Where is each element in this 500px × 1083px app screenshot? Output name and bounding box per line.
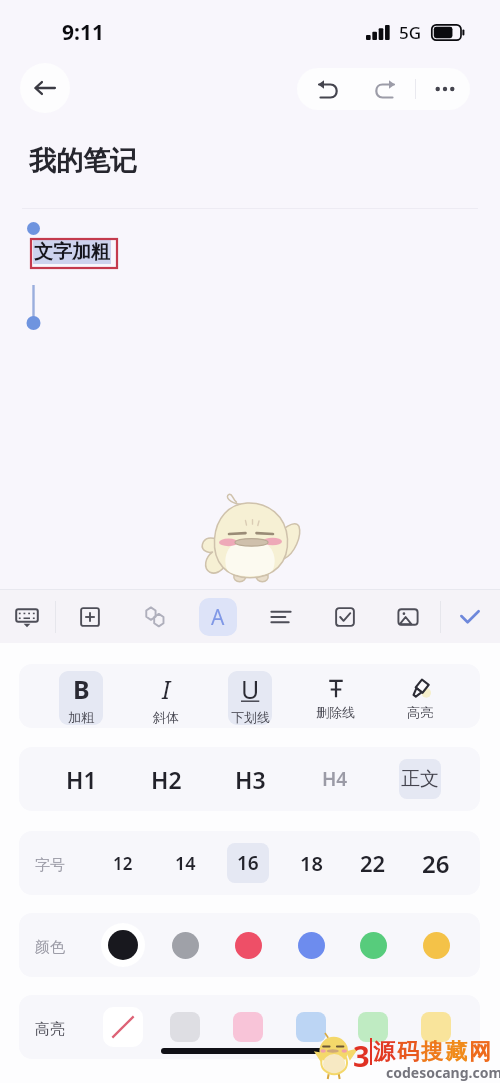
staticText: 高亮 (407, 704, 433, 720)
button[interactable]: 14 (164, 843, 206, 883)
button[interactable]: 删除线 (313, 671, 357, 725)
staticText: H3 (235, 764, 266, 795)
button[interactable]: H2 (145, 759, 187, 799)
button[interactable]: Insert (68, 595, 112, 639)
staticText: 颜色 (35, 938, 65, 957)
staticText: 3 (353, 1036, 370, 1075)
button[interactable]: H4 (314, 759, 356, 799)
staticText: H2 (151, 764, 182, 795)
button[interactable]: Redo (361, 68, 409, 110)
button[interactable]: 正文 (399, 759, 441, 799)
staticText: 加粗 (68, 709, 94, 725)
staticText: 删除线 (316, 704, 355, 720)
staticText: 9:11 (62, 18, 104, 47)
staticText: codesocang.com (386, 1063, 500, 1082)
button[interactable]: I (144, 671, 188, 725)
button[interactable]: Back (20, 63, 70, 113)
button[interactable]: Text colour (224, 921, 272, 969)
button[interactable]: More options (420, 68, 470, 110)
button[interactable]: No highlight (99, 1003, 147, 1051)
button[interactable]: Keyboard (5, 595, 49, 639)
staticText: 高亮 (35, 1020, 65, 1039)
button[interactable]: H3 (229, 759, 271, 799)
button[interactable]: 12 (102, 843, 144, 883)
button[interactable]: Image (386, 595, 430, 639)
staticText: 22 (360, 848, 386, 878)
button[interactable]: Text format (199, 598, 237, 636)
staticText: 14 (175, 851, 196, 876)
staticText: 26 (422, 847, 450, 880)
button[interactable]: Text colour (412, 921, 460, 969)
button[interactable]: Text colour (349, 921, 397, 969)
staticText: 藏 (445, 1038, 469, 1066)
button[interactable]: Checklist (323, 595, 367, 639)
staticText: 源 (373, 1038, 397, 1066)
button[interactable]: Highlight colour (224, 1003, 272, 1051)
button[interactable]: 22 (352, 843, 394, 883)
button[interactable]: B (59, 671, 103, 725)
staticText: 12 (113, 852, 133, 875)
button[interactable]: 高亮 (398, 671, 442, 725)
button[interactable]: 16 (227, 843, 269, 883)
button[interactable]: Highlight colour (412, 1003, 460, 1051)
staticText: B (73, 672, 90, 706)
button[interactable]: U (228, 671, 272, 725)
staticText: I (162, 672, 171, 706)
staticText: 网 (469, 1038, 493, 1066)
staticText: 正文 (401, 767, 439, 791)
staticText: 5G (399, 21, 422, 44)
button[interactable]: Link (133, 595, 177, 639)
button[interactable]: Align (259, 595, 303, 639)
button[interactable]: H1 (60, 759, 102, 799)
button[interactable]: 26 (415, 843, 457, 883)
button[interactable]: Text colour (161, 921, 209, 969)
staticText: U (241, 672, 260, 706)
button[interactable]: Done (448, 595, 492, 639)
staticText: 18 (300, 850, 323, 877)
staticText: 搜 (421, 1038, 445, 1066)
button[interactable]: Highlight colour (349, 1003, 397, 1051)
staticText: 斜体 (153, 709, 179, 725)
staticText: A (211, 603, 225, 632)
button[interactable]: Highlight colour (287, 1003, 335, 1051)
staticText: 我的笔记 (29, 144, 137, 178)
staticText: 16 (237, 850, 259, 876)
button[interactable]: Text colour (287, 921, 335, 969)
staticText: H4 (322, 766, 348, 792)
button[interactable]: 18 (290, 843, 332, 883)
staticText: 文字加粗 (34, 240, 110, 264)
staticText: 码 (397, 1038, 421, 1066)
button[interactable]: Text colour (99, 921, 147, 969)
button[interactable]: Undo (303, 68, 351, 110)
staticText: 字号 (35, 856, 65, 875)
button[interactable]: Highlight colour (161, 1003, 209, 1051)
staticText: 下划线 (231, 709, 270, 725)
staticText: H1 (66, 764, 97, 795)
